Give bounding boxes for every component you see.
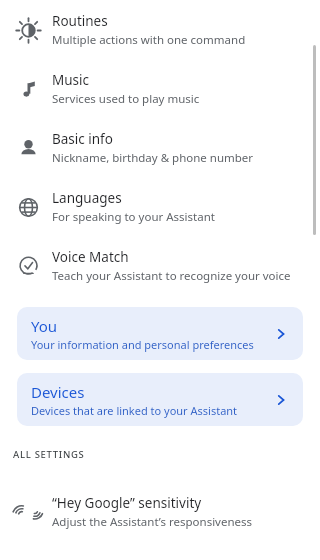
staticText: Languages [52,189,122,207]
button[interactable]: Music [0,59,320,118]
other: Voice Match [18,256,39,277]
staticText: Devices [31,382,85,402]
staticText: Teach your Assistant to recognize your v… [52,268,291,284]
button[interactable]: Languages [0,177,320,236]
staticText: Adjust the Assistant’s responsiveness [52,514,253,530]
staticText: Your information and personal preference… [31,337,254,352]
other: Routines [18,20,39,41]
staticText: Devices that are linked to your Assistan… [31,403,238,418]
other: Hey Google sensitivity [18,502,39,523]
staticText: Multiple actions with one command [52,32,246,48]
staticText: Basic info [52,130,113,148]
staticText: You [31,316,58,336]
button[interactable]: Devices [17,373,303,426]
button[interactable]: You [17,307,303,360]
other: Basic info [18,138,39,159]
button[interactable]: Routines [0,0,320,59]
staticText: ALL SETTINGS [13,448,85,461]
other: Languages [18,197,39,218]
button[interactable]: Basic info [0,118,320,177]
other: Music [18,79,39,100]
staticText: Voice Match [52,248,129,266]
staticText: Nickname, birthday & phone number [52,150,254,166]
button[interactable]: Hey Google sensitivity [0,482,320,541]
staticText: Routines [52,12,108,30]
staticText: For speaking to your Assistant [52,209,215,225]
staticText: Music [52,71,90,89]
button[interactable]: Voice Match [0,236,320,295]
staticText: “Hey Google” sensitivity [52,494,202,512]
staticText: Services used to play music [52,91,200,107]
